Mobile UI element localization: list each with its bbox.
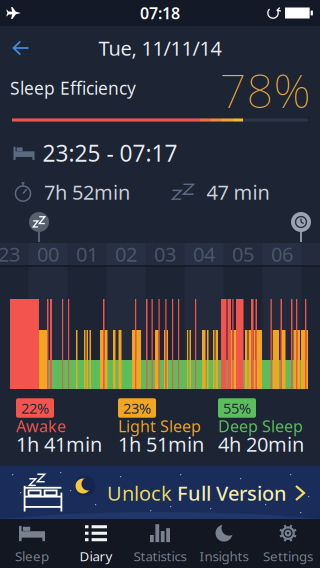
staticText: Diary — [79, 547, 112, 565]
staticText: Statistics — [133, 547, 186, 565]
button[interactable]: Diary — [64, 519, 128, 568]
staticText: 07:18 — [140, 2, 180, 24]
staticText: 03 — [154, 241, 176, 267]
staticText: 55% — [223, 398, 251, 418]
staticText: Sleep Efficiency — [10, 76, 136, 99]
staticText: 23% — [123, 398, 151, 418]
staticText: 78% — [219, 59, 310, 121]
staticText: Deep Sleep — [218, 415, 303, 437]
staticText: 4h 20min — [218, 431, 304, 457]
button[interactable]: Statistics — [128, 519, 192, 568]
staticText: 06 — [271, 241, 293, 267]
staticText: Light Sleep — [118, 415, 201, 437]
button[interactable]: Insights — [192, 519, 256, 568]
staticText: Insights — [199, 547, 248, 565]
button[interactable]: Settings — [256, 519, 320, 568]
button[interactable]: Unlock Full Version — [0, 466, 320, 519]
staticText: 23:25 - 07:17 — [42, 138, 177, 168]
button[interactable]: Sleep — [0, 519, 64, 568]
staticText: Awake — [16, 415, 66, 437]
staticText: 04 — [193, 241, 215, 267]
staticText: Settings — [263, 547, 313, 565]
button[interactable]: Back — [5, 33, 36, 62]
staticText: 1h 51min — [118, 431, 204, 457]
staticText: 7h 52min — [44, 179, 130, 205]
staticText: 22% — [21, 398, 49, 418]
staticText: Full Version — [177, 480, 287, 506]
button[interactable]: Bedtime handle — [28, 210, 50, 244]
staticText: 47 min — [206, 179, 269, 205]
staticText: 02 — [115, 241, 137, 267]
staticText: 05 — [232, 241, 254, 267]
staticText: 23 — [0, 241, 20, 267]
staticText: Unlock — [107, 480, 172, 506]
staticText: Tue, 11/11/14 — [98, 35, 221, 61]
staticText: 1h 41min — [16, 431, 102, 457]
staticText: 00 — [37, 241, 59, 267]
staticText: 01 — [76, 241, 98, 267]
button[interactable]: Wake time handle — [290, 210, 312, 244]
staticText: Sleep — [15, 547, 49, 565]
